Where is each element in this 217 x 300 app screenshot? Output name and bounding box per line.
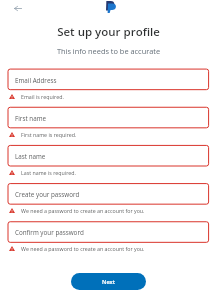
- staticText: We need a password to create an account …: [21, 207, 145, 214]
- staticText: Last name: [15, 152, 46, 161]
- button[interactable]: Back: [10, 0, 26, 16]
- button[interactable]: Confirm your password: [8, 221, 210, 243]
- staticText: Email Address: [15, 76, 57, 85]
- button[interactable]: Email Address: [8, 69, 210, 91]
- staticText: Last name is required.: [21, 169, 76, 176]
- staticText: Email is required.: [21, 93, 64, 100]
- staticText: Set up your profile: [0, 24, 217, 40]
- staticText: Create your password: [15, 190, 80, 199]
- staticText: Next: [102, 278, 115, 286]
- staticText: We need a password to create an account …: [21, 245, 145, 252]
- staticText: This info needs to be accurate: [0, 46, 217, 56]
- staticText: First name is required.: [21, 131, 77, 138]
- staticText: Confirm your password: [15, 228, 84, 237]
- button[interactable]: Create your password: [8, 183, 210, 205]
- button[interactable]: Last name: [8, 145, 210, 167]
- button[interactable]: First name: [8, 107, 210, 129]
- staticText: First name: [15, 114, 47, 123]
- button[interactable]: Next: [71, 273, 146, 290]
